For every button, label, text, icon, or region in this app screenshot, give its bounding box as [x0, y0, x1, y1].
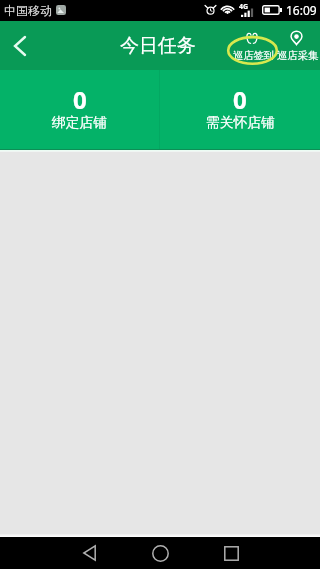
staticText: 0 [233, 83, 247, 116]
button[interactable]: 巡店签到 [227, 29, 278, 65]
staticText: 绑定店铺 [52, 114, 108, 131]
staticText: 需关怀店铺 [206, 114, 275, 131]
button[interactable]: 0 [160, 70, 320, 149]
button[interactable]: Back [0, 21, 40, 70]
button[interactable]: 巡店采集 [277, 29, 319, 65]
button[interactable]: Home [137, 537, 183, 569]
staticText: 4G [239, 2, 249, 12]
staticText: 中国移动 [4, 3, 52, 18]
staticText: 16:09 [286, 2, 317, 18]
staticText: 今日任务 [120, 34, 196, 58]
button[interactable]: Recent apps [208, 537, 254, 569]
staticText: 巡店签到 [233, 49, 275, 62]
button[interactable]: 0 [0, 70, 159, 149]
staticText: 0 [73, 83, 87, 116]
staticText: 巡店采集 [277, 49, 319, 62]
button[interactable]: Back [66, 537, 112, 569]
